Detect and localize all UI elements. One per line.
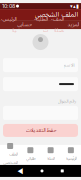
button[interactable]: طلباتي xyxy=(20,145,40,165)
button[interactable]: المفضلة xyxy=(49,20,65,29)
button[interactable]: المزيد xyxy=(65,20,81,29)
button[interactable]: الرئيسية xyxy=(0,20,16,29)
staticText: الرئيسية xyxy=(65,154,76,163)
staticText: الملف الشخصي xyxy=(3,150,18,167)
button[interactable]: حسابي xyxy=(16,20,32,29)
staticText: الرئيسية xyxy=(0,13,16,36)
staticText: المزيد xyxy=(67,19,79,30)
staticText: السلة xyxy=(47,154,55,163)
staticText: 10:08 xyxy=(2,3,15,9)
button[interactable]: السلة xyxy=(40,145,61,165)
button[interactable]: الطلبات xyxy=(32,20,49,29)
button[interactable]: الرئيسية xyxy=(61,145,81,165)
staticText: الاسم xyxy=(63,60,74,70)
staticText: حفظ التعديلات xyxy=(25,125,56,136)
staticText: ▾▴▮ xyxy=(70,3,79,9)
staticText: الملف الشخصي xyxy=(34,7,78,22)
staticText: المفضلة xyxy=(50,13,63,36)
staticText: الطلبات xyxy=(33,13,47,36)
staticText: رقم الجوال xyxy=(57,96,76,106)
button[interactable]: الملف الشخصي xyxy=(0,145,20,165)
staticText: حسابي xyxy=(17,19,32,30)
staticText: ◀ xyxy=(17,167,23,175)
button[interactable]: حفظ التعديلات xyxy=(3,124,78,137)
staticText: طلباتي xyxy=(25,154,35,163)
